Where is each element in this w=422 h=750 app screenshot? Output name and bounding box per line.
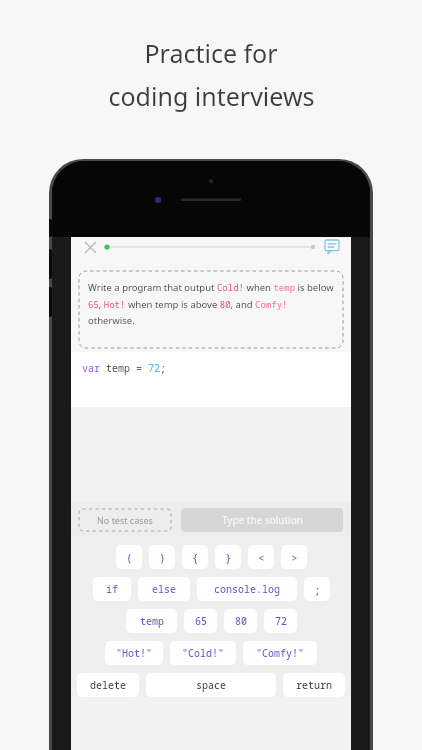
button[interactable]: delete [77,673,139,697]
staticText: "Comfy!" [256,646,304,660]
staticText: Practice for [144,36,278,70]
button[interactable]: ; [304,577,330,601]
staticText: < [258,550,265,565]
button[interactable]: 65 [184,609,217,633]
staticText: } [225,550,232,565]
staticText: ( [126,550,133,565]
button[interactable]: else [138,577,190,601]
staticText: ; [314,582,321,597]
staticText: return [296,678,332,692]
staticText: No test cases [97,514,153,526]
staticText: Type the solution [222,513,303,527]
button[interactable]: > [281,545,307,569]
button[interactable]: 72 [264,609,297,633]
button[interactable]: "Cold!" [170,641,236,665]
button[interactable]: return [283,673,345,697]
staticText: > [291,550,298,565]
button[interactable]: space [146,673,276,697]
button[interactable]: { [182,545,208,569]
button[interactable]: if [93,577,131,601]
button[interactable]: Comments [322,237,342,257]
button[interactable]: < [248,545,274,569]
staticText: "Hot!" [116,646,152,660]
staticText: space [196,678,226,692]
staticText: else [152,582,176,596]
staticText: "Cold!" [182,646,224,660]
staticText: 72 [275,614,287,628]
button[interactable]: No test cases [79,509,171,531]
staticText: delete [90,678,126,692]
button[interactable]: var temp = 72; [71,352,351,407]
button[interactable]: "Hot!" [105,641,163,665]
staticText: 65 [195,614,207,628]
staticText: { [192,550,199,565]
staticText: Write a program that output Cold! when t… [88,281,334,326]
button[interactable]: ) [149,545,175,569]
staticText: var temp = 72; [82,361,166,375]
button[interactable]: temp [126,609,177,633]
staticText: if [106,582,118,596]
button[interactable]: 80 [224,609,257,633]
button[interactable]: Close [80,237,100,257]
button[interactable]: ( [116,545,142,569]
button[interactable]: "Comfy!" [243,641,317,665]
staticText: console.log [214,582,280,596]
button[interactable]: console.log [197,577,297,601]
button[interactable]: } [215,545,241,569]
button[interactable]: Type the solution [181,508,343,532]
staticText: 80 [235,614,247,628]
staticText: coding interviews [108,79,315,113]
staticText: temp [140,614,164,628]
staticText: ) [159,550,166,565]
